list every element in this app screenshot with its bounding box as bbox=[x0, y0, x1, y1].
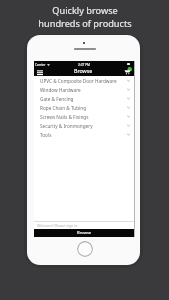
staticText: UPVC & Composite Door Hardware bbox=[40, 78, 127, 84]
button[interactable]: Gate & Fencing bbox=[34, 94, 134, 103]
button[interactable]: Tools bbox=[34, 130, 134, 139]
staticText: Window Hardware bbox=[40, 87, 127, 93]
button[interactable]: Window Hardware bbox=[34, 85, 134, 94]
button[interactable]: Rope Chain & Tubing bbox=[34, 103, 134, 112]
staticText: Welcome! Please sign in bbox=[37, 223, 78, 228]
staticText: Screws Nails & Fixings bbox=[40, 114, 127, 120]
staticText: Rope Chain & Tubing bbox=[40, 105, 127, 111]
staticText: Gate & Fencing bbox=[40, 96, 127, 102]
button[interactable]: Screws Nails & Fixings bbox=[34, 112, 134, 121]
button[interactable]: Home bbox=[77, 241, 93, 257]
staticText: Security & Ironmongery bbox=[40, 123, 127, 129]
button[interactable]: Security & Ironmongery bbox=[34, 121, 134, 130]
button[interactable]: UPVC & Composite Door Hardware bbox=[34, 76, 134, 85]
staticText: Carrier bbox=[35, 63, 46, 67]
staticText: Tools bbox=[40, 132, 127, 138]
staticText: Browse bbox=[74, 67, 93, 74]
button[interactable]: Browse bbox=[34, 229, 134, 237]
staticText: Quickly browse bbox=[52, 4, 118, 17]
staticText: 3:37 PM bbox=[78, 63, 90, 67]
button[interactable]: Shopping cart bbox=[124, 67, 132, 75]
staticText: hundreds of products bbox=[38, 17, 132, 30]
staticText: Browse bbox=[77, 230, 92, 236]
button[interactable]: Menu bbox=[37, 70, 43, 75]
